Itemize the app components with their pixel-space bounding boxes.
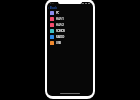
staticText: Hi-Fi 2: [56, 23, 64, 27]
button[interactable]: ‹ Back: [47, 5, 93, 10]
button[interactable]: RADIO: [47, 34, 93, 40]
button[interactable]: USB: [47, 40, 93, 46]
staticText: Hi-Fi 1: [56, 17, 64, 21]
button[interactable]: Hi-Fi 1: [47, 16, 93, 22]
staticText: SONOS: [56, 29, 65, 33]
button[interactable]: SONOS: [47, 28, 93, 34]
staticText: PC: [56, 11, 60, 15]
staticText: 9:41: [50, 2, 54, 5]
staticText: USB: [56, 41, 62, 45]
staticText: ‹ Back: [48, 6, 58, 10]
button[interactable]: PC: [47, 10, 93, 16]
button[interactable]: Hi-Fi 2: [47, 22, 93, 28]
staticText: RADIO: [56, 35, 65, 39]
